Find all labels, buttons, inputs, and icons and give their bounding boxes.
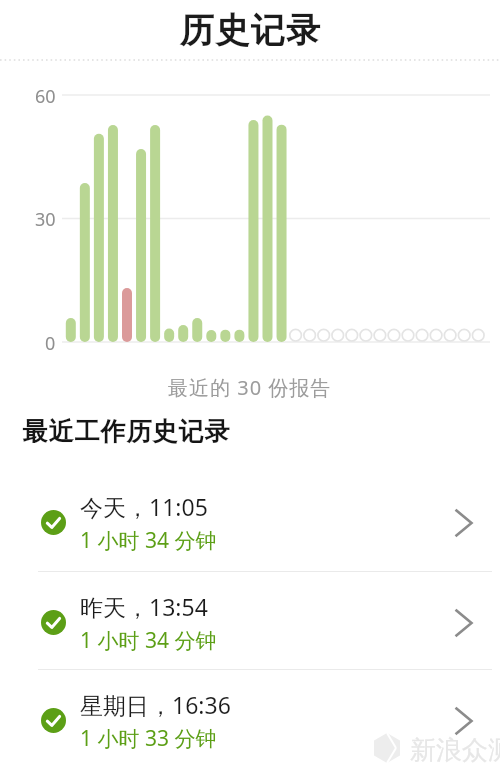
staticText: 今天，11:05 [80,491,208,522]
staticText: 星期日，16:36 [80,689,231,720]
button[interactable]: 今天，11:05 [0,473,500,572]
staticText: 30 [35,207,56,227]
button[interactable]: 星期日，16:36 [0,671,500,766]
staticText: 历史记录 [179,9,321,52]
staticText: 最近的 30 份报告 [168,374,332,401]
staticText: 60 [35,84,56,104]
staticText: 1 小时 34 分钟 [80,626,217,655]
staticText: 0 [45,331,56,351]
staticText: 1 小时 33 分钟 [80,724,217,753]
button[interactable]: 昨天，13:54 [0,573,500,672]
staticText: 最近工作历史记录 [22,416,230,447]
staticText: 新浪众测 [410,734,500,766]
staticText: 昨天，13:54 [80,591,208,622]
staticText: 1 小时 34 分钟 [80,526,217,555]
